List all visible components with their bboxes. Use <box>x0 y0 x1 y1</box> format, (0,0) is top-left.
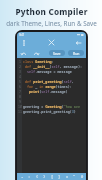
staticText: 4 <box>19 75 21 79</box>
staticText: : <box>28 174 31 179</box>
staticText: " <box>73 174 76 179</box>
staticText: 8 <box>19 95 21 99</box>
staticText: Python Compiler <box>15 6 88 17</box>
button[interactable]: # <box>79 173 85 180</box>
button[interactable]: Run <box>68 50 84 56</box>
button[interactable]: ) <box>41 173 47 180</box>
staticText: Save <box>53 51 61 56</box>
staticText: print(self.message) <box>29 89 68 94</box>
staticText: greeting.print_greeting(3) <box>23 109 76 114</box>
staticText: 9:41 <box>19 33 25 37</box>
staticText: [ <box>51 174 54 179</box>
staticText: 10 <box>18 105 22 109</box>
staticText: 7 <box>19 90 21 94</box>
staticText: = <box>66 174 69 179</box>
button[interactable]: → <box>19 173 25 180</box>
button[interactable]: : <box>26 173 32 180</box>
staticText: 1 <box>19 60 21 64</box>
button[interactable]: Menu <box>20 39 28 47</box>
button[interactable]: Back <box>74 38 83 47</box>
staticText: self.message = message <box>27 69 72 74</box>
staticText: def print_greeting(self, times): <box>25 79 86 84</box>
button[interactable]: ( <box>34 173 40 180</box>
staticText: greeting = Greeting("how are you") <box>23 104 86 109</box>
staticText: ] <box>58 174 61 179</box>
button[interactable]: Undo <box>19 49 27 57</box>
staticText: → <box>21 174 24 179</box>
staticText: for _ in range(times): <box>27 84 72 89</box>
staticText: ( <box>36 174 39 179</box>
button[interactable]: ] <box>56 173 62 180</box>
staticText: 11 <box>18 110 22 114</box>
button[interactable]: " <box>71 173 77 180</box>
staticText: ) <box>43 174 46 179</box>
button[interactable]: = <box>64 173 70 180</box>
staticText: 2 <box>19 65 21 69</box>
staticText: # <box>81 174 84 179</box>
staticText: 9 <box>19 100 21 104</box>
staticText: dark Theme, Lines, Run & Save <box>6 19 97 28</box>
button[interactable]: [ <box>49 173 55 180</box>
staticText: 3 <box>19 70 21 74</box>
button[interactable]: Redo <box>32 49 40 57</box>
staticText: def __init__(self, message): <box>25 64 82 69</box>
button[interactable]: Save <box>49 50 65 56</box>
staticText: 5 <box>19 80 21 84</box>
staticText: Run <box>73 51 80 56</box>
staticText: 6 <box>19 85 21 89</box>
button[interactable]: Clear <box>47 38 56 47</box>
staticText: class Greeting: <box>23 59 54 64</box>
